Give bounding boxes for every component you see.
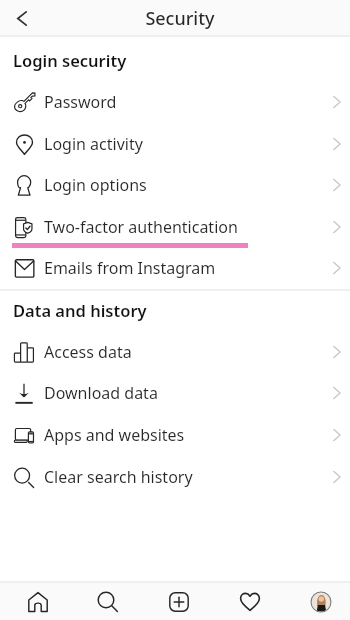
staticText: Apps and websites <box>44 424 185 446</box>
button[interactable]: Profile <box>299 583 343 620</box>
button[interactable]: Back <box>6 2 38 34</box>
button[interactable]: Password <box>0 81 350 123</box>
staticText: Login security <box>13 49 127 71</box>
button[interactable]: Create <box>157 583 201 620</box>
staticText: Clear search history <box>44 466 193 488</box>
staticText: Login activity <box>44 133 143 155</box>
button[interactable]: Apps and websites <box>0 414 350 456</box>
staticText: Security <box>145 6 215 31</box>
button[interactable]: Clear search history <box>0 456 350 498</box>
button[interactable]: Search <box>86 583 130 620</box>
button[interactable]: Activity <box>228 583 272 620</box>
button[interactable]: Emails from Instagram <box>0 247 350 289</box>
staticText: Access data <box>44 341 132 363</box>
staticText: Login options <box>44 174 147 196</box>
button[interactable]: Two-factor authentication <box>0 206 350 248</box>
button[interactable]: Home <box>16 583 60 620</box>
staticText: Emails from Instagram <box>44 257 216 279</box>
button[interactable]: Login activity <box>0 123 350 165</box>
button[interactable]: Login options <box>0 164 350 206</box>
button[interactable]: Download data <box>0 372 350 414</box>
staticText: Password <box>44 91 117 113</box>
button[interactable]: Access data <box>0 331 350 373</box>
staticText: Data and history <box>13 299 147 321</box>
staticText: Download data <box>44 382 158 404</box>
staticText: Two-factor authentication <box>44 216 238 238</box>
